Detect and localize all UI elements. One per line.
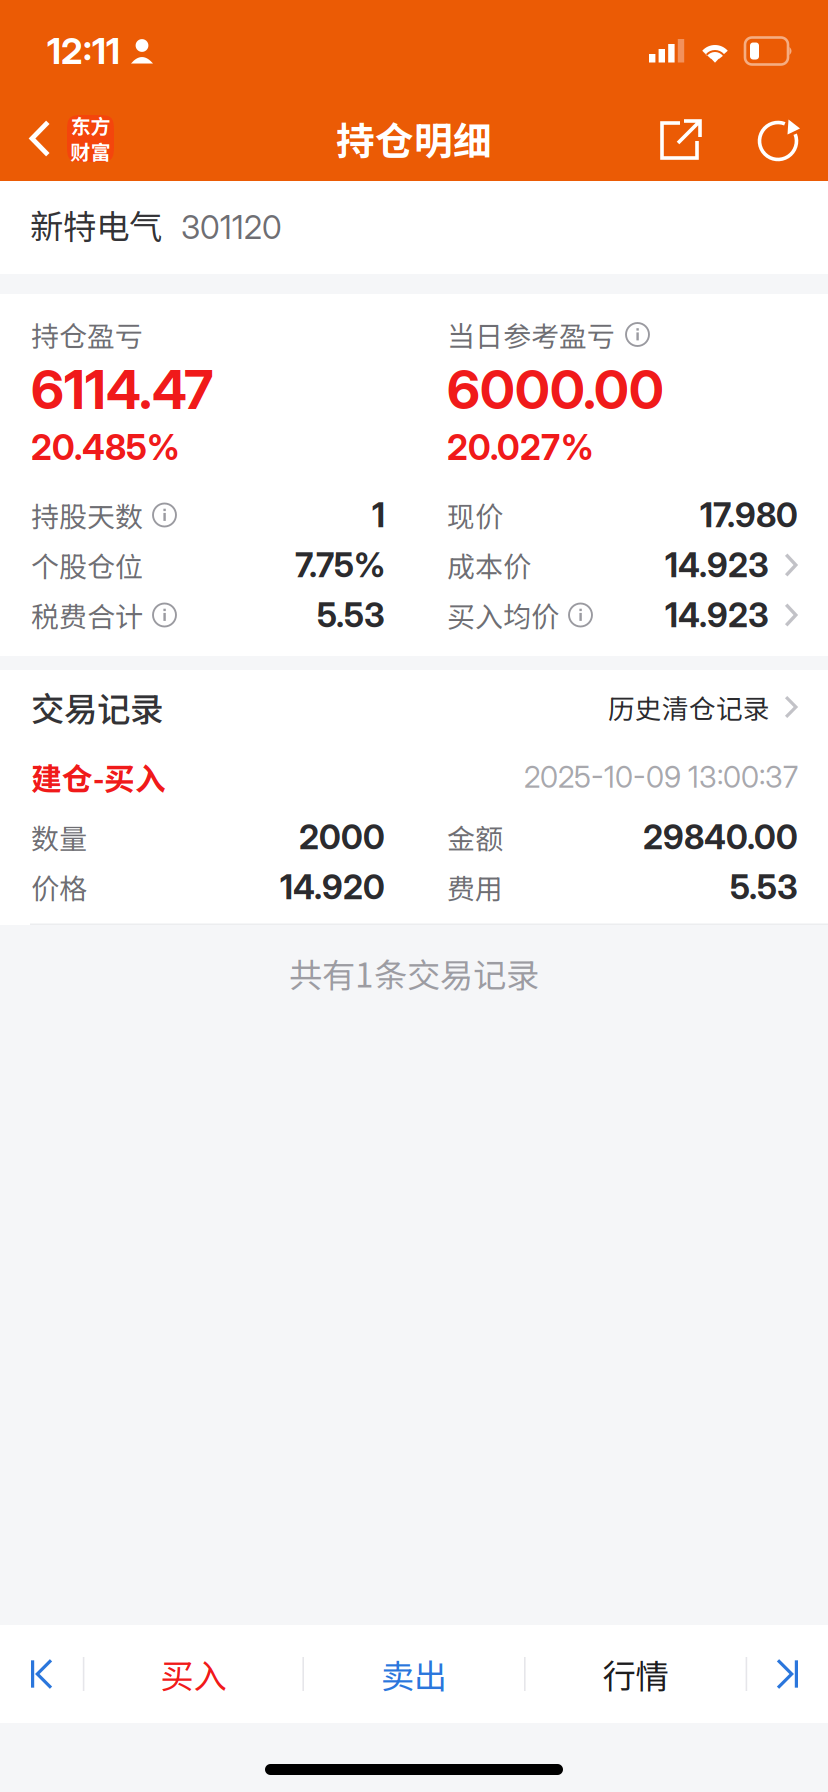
staticText: 交易记录	[31, 683, 163, 731]
staticText: 金额	[447, 817, 503, 857]
button[interactable]: 分享	[646, 93, 716, 183]
staticText: 新特电气	[30, 200, 162, 249]
staticText: 税费合计	[31, 595, 143, 635]
staticText: 当日参考盈亏	[447, 314, 615, 355]
button[interactable]: 历史清仓记录	[608, 670, 798, 744]
staticText: 个股仓位	[31, 545, 143, 585]
staticText: 301120	[181, 208, 282, 247]
staticText: 2000	[299, 817, 385, 857]
staticText: 17.980	[700, 495, 798, 535]
staticText: 持股天数	[31, 495, 143, 535]
button[interactable]: 买入	[84, 1625, 302, 1723]
staticText: 价格	[31, 867, 87, 907]
staticText: 2025-10-09 13:00:37	[524, 759, 798, 795]
staticText: 1	[372, 495, 385, 535]
staticText: 29840.00	[643, 817, 798, 857]
staticText: 财富	[70, 136, 110, 165]
staticText: 买入均价	[447, 595, 559, 635]
staticText: 6000.00	[447, 357, 664, 422]
button[interactable]: 最后一条	[747, 1625, 827, 1723]
staticText: 卖出	[381, 1650, 447, 1698]
staticText: 费用	[447, 867, 503, 907]
staticText: 历史清仓记录	[608, 688, 770, 726]
button[interactable]: 行情	[526, 1625, 746, 1723]
staticText: 建仓-买入	[31, 755, 166, 799]
button[interactable]: 第一条	[1, 1625, 83, 1723]
staticText: 成本价	[447, 545, 531, 585]
button[interactable]: 成本价	[447, 540, 798, 590]
staticText: 6114.47	[31, 357, 213, 422]
staticText: 持仓盈亏	[31, 314, 143, 355]
staticText: 5.53	[317, 595, 385, 635]
staticText: 12:11	[47, 29, 120, 73]
staticText: 14.920	[280, 867, 385, 907]
staticText: 共有1条交易记录	[289, 949, 539, 997]
staticText: 买入	[160, 1650, 226, 1698]
staticText: 现价	[447, 495, 503, 535]
staticText: 行情	[603, 1650, 669, 1698]
staticText: 5.53	[730, 867, 798, 907]
staticText: 14.923	[665, 545, 769, 585]
button[interactable]: 卖出	[304, 1625, 524, 1723]
staticText: 数量	[31, 817, 87, 857]
staticText: 20.485%	[31, 426, 180, 468]
button[interactable]: 买入均价	[447, 590, 798, 640]
staticText: 7.75%	[295, 545, 385, 585]
staticText: 东方	[70, 110, 110, 139]
staticText: 持仓明细	[336, 110, 492, 166]
button[interactable]: 返回	[0, 96, 130, 181]
button[interactable]: 刷新	[742, 94, 816, 182]
staticText: 14.923	[665, 595, 769, 635]
staticText: 20.027%	[447, 426, 594, 468]
